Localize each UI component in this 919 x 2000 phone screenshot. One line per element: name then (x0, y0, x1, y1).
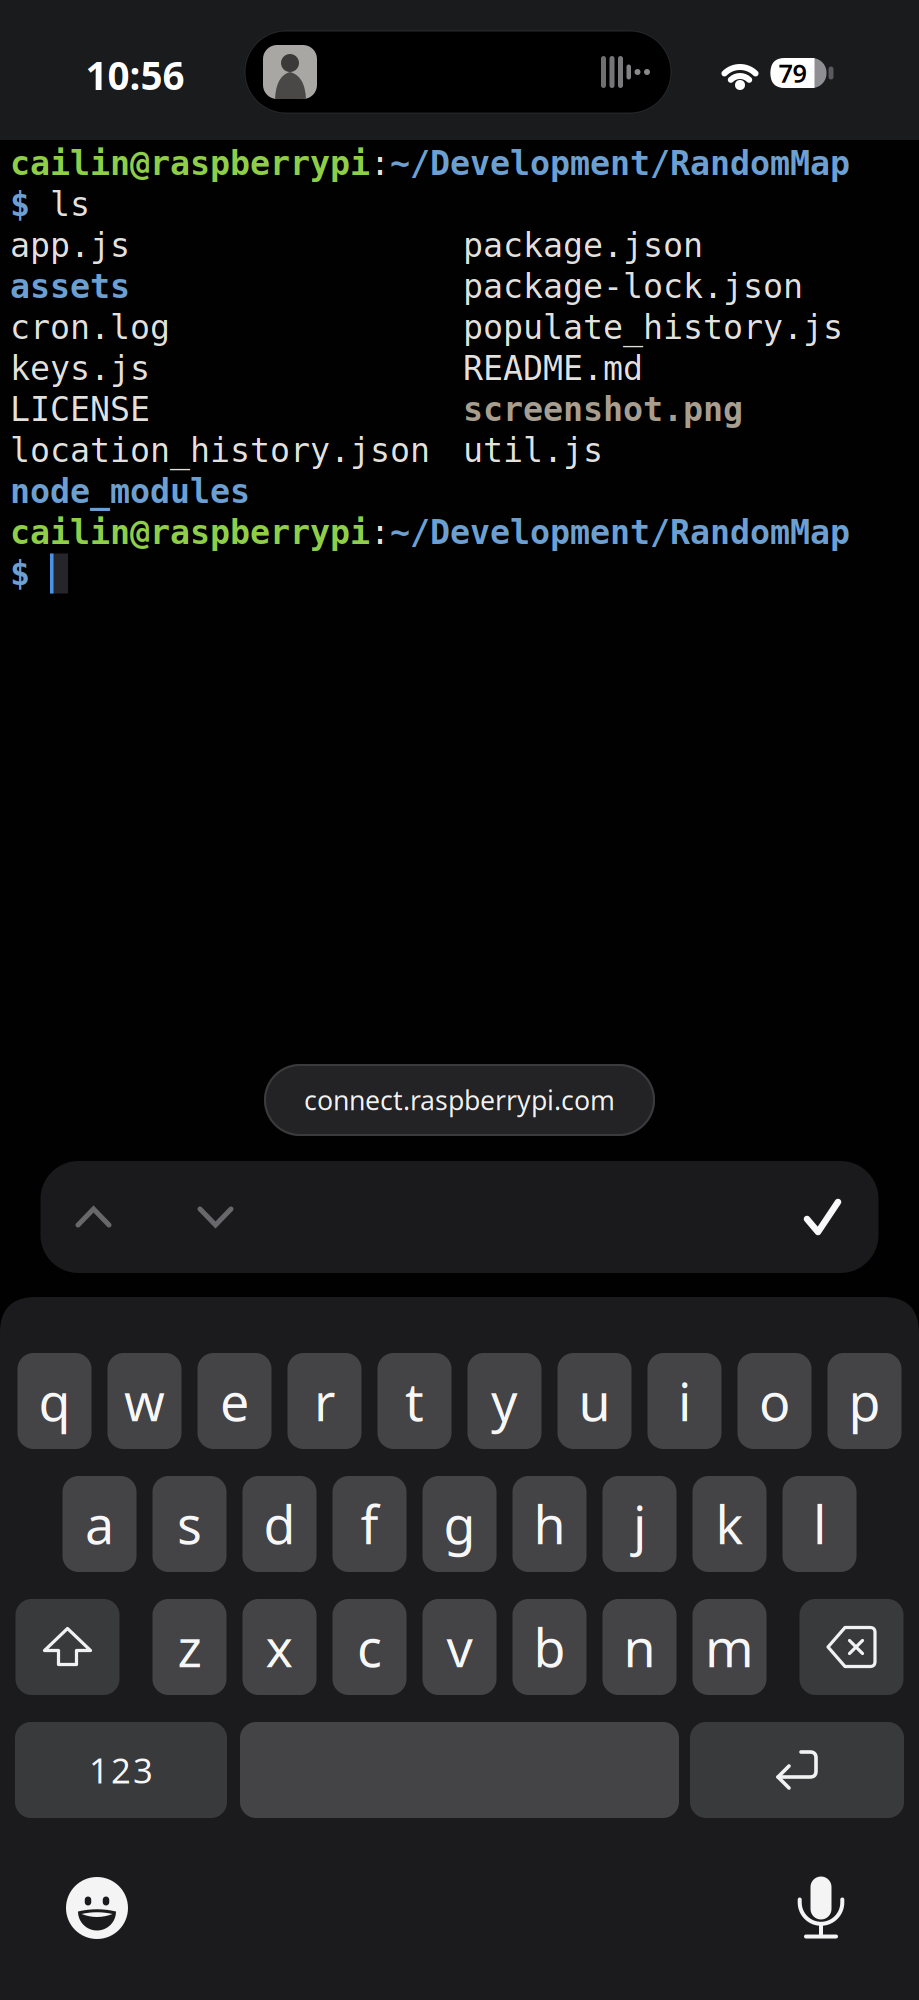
staticText: w (124, 1366, 165, 1436)
staticText: s (177, 1489, 202, 1559)
staticText: package.json (463, 227, 703, 264)
staticText: ~/Development/RandomMap (390, 514, 850, 551)
button[interactable]: p (827, 1353, 901, 1449)
button[interactable]: t (377, 1353, 451, 1449)
staticText: node_modules (10, 473, 250, 510)
staticText: d (263, 1489, 295, 1559)
staticText: package-lock.json (463, 268, 803, 305)
staticText: a (85, 1489, 114, 1559)
button[interactable]: Done (780, 1161, 864, 1273)
staticText: location_history.json (10, 432, 430, 469)
button[interactable]: Previous (58, 1161, 128, 1273)
button[interactable]: y (467, 1353, 541, 1449)
button[interactable]: h (512, 1476, 586, 1572)
staticText: $ (10, 555, 30, 592)
staticText: keys.js (10, 350, 150, 387)
button[interactable]: j (602, 1476, 676, 1572)
staticText: b (533, 1612, 565, 1682)
staticText: app.js (10, 227, 130, 264)
staticText: r (314, 1366, 335, 1436)
button[interactable]: e (197, 1353, 271, 1449)
button[interactable]: s (152, 1476, 226, 1572)
button[interactable]: Delete (799, 1599, 903, 1695)
button[interactable]: n (602, 1599, 676, 1695)
staticText: 79 (778, 56, 806, 90)
button[interactable]: Shift (15, 1599, 119, 1695)
button[interactable]: a (62, 1476, 136, 1572)
button[interactable]: i (647, 1353, 721, 1449)
staticText: x (265, 1612, 293, 1682)
staticText: e (220, 1366, 249, 1436)
button[interactable]: Return (690, 1722, 904, 1818)
staticText: v (446, 1612, 472, 1682)
staticText: 123 (89, 1747, 153, 1793)
staticText: q (38, 1366, 70, 1436)
button[interactable]: Next (180, 1161, 250, 1273)
staticText: o (759, 1366, 790, 1436)
button[interactable]: o (737, 1353, 811, 1449)
staticText: ~/Development/RandomMap (390, 145, 850, 182)
staticText: : (370, 514, 390, 551)
staticText: README.md (463, 350, 643, 387)
staticText: cailin@raspberrypi (10, 145, 370, 182)
button[interactable]: d (242, 1476, 316, 1572)
staticText: screenshot.png (463, 391, 743, 428)
button[interactable]: f (332, 1476, 406, 1572)
staticText: l (813, 1489, 826, 1559)
staticText: j (633, 1489, 646, 1559)
button[interactable]: v (422, 1599, 496, 1695)
staticText: u (578, 1366, 610, 1436)
button[interactable]: x (242, 1599, 316, 1695)
staticText: n (623, 1612, 655, 1682)
staticText: util.js (463, 432, 603, 469)
staticText: cailin@raspberrypi (10, 514, 370, 551)
button[interactable]: w (107, 1353, 181, 1449)
button[interactable]: m (692, 1599, 766, 1695)
button[interactable]: Numbers (15, 1722, 227, 1818)
staticText: p (848, 1366, 880, 1436)
staticText: LICENSE (10, 391, 150, 428)
button[interactable]: u (557, 1353, 631, 1449)
staticText: f (360, 1489, 378, 1559)
staticText: : (370, 145, 390, 182)
staticText: h (533, 1489, 565, 1559)
button[interactable]: r (287, 1353, 361, 1449)
staticText: cron.log (10, 309, 170, 346)
staticText: assets (10, 268, 130, 305)
staticText: g (443, 1489, 475, 1559)
button[interactable]: k (692, 1476, 766, 1572)
staticText: y (491, 1366, 518, 1436)
staticText: 10:56 (85, 49, 184, 101)
button[interactable]: g (422, 1476, 496, 1572)
button[interactable]: Dictation (798, 1875, 844, 1940)
staticText: populate_history.js (463, 309, 843, 346)
staticText: z (177, 1612, 201, 1682)
staticText: $ (10, 186, 50, 223)
staticText: t (405, 1366, 424, 1436)
button[interactable]: z (152, 1599, 226, 1695)
button[interactable]: Emoji (66, 1877, 128, 1939)
staticText: k (715, 1489, 743, 1559)
button[interactable]: l (782, 1476, 856, 1572)
staticText: c (357, 1612, 382, 1682)
button[interactable]: c (332, 1599, 406, 1695)
staticText: m (705, 1612, 754, 1682)
staticText: i (678, 1366, 691, 1436)
staticText: ls (50, 186, 90, 223)
button[interactable]: Now Playing (244, 30, 672, 114)
staticText: connect.raspberrypi.com (304, 1082, 615, 1118)
button[interactable]: connect.raspberrypi.com (264, 1064, 655, 1136)
button[interactable]: q (17, 1353, 91, 1449)
button[interactable]: b (512, 1599, 586, 1695)
